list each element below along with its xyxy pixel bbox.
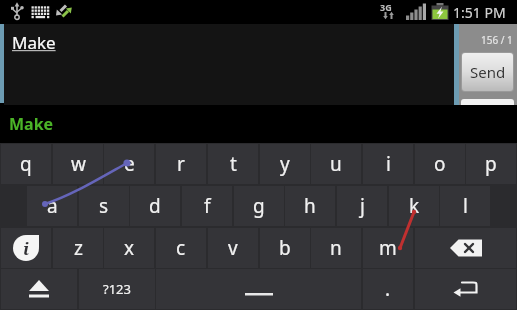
- staticText: Make: [9, 113, 54, 135]
- button[interactable]: Send: [462, 53, 513, 91]
- staticText: e: [124, 151, 135, 177]
- button[interactable]: j: [337, 186, 387, 226]
- button[interactable]: p: [466, 144, 516, 184]
- staticText: v: [228, 235, 238, 261]
- staticText: a: [47, 193, 58, 219]
- staticText: l: [463, 193, 468, 219]
- button[interactable]: q: [1, 144, 51, 184]
- staticText: t: [230, 151, 237, 177]
- button[interactable]: ?123: [79, 269, 155, 309]
- staticText: k: [409, 193, 420, 219]
- button[interactable]: t: [208, 144, 258, 184]
- button[interactable]: [156, 269, 361, 309]
- button[interactable]: a: [27, 186, 77, 226]
- button[interactable]: b: [260, 228, 310, 268]
- staticText: f: [204, 193, 211, 219]
- button[interactable]: v: [208, 228, 258, 268]
- staticText: n: [330, 235, 342, 261]
- button[interactable]: Make: [4, 24, 454, 105]
- staticText: w: [71, 151, 86, 177]
- staticText: p: [485, 151, 497, 177]
- button[interactable]: Make: [0, 105, 517, 143]
- button[interactable]: .: [363, 269, 413, 309]
- button[interactable]: u: [311, 144, 361, 184]
- button[interactable]: w: [53, 144, 103, 184]
- staticText: d: [149, 193, 161, 219]
- staticText: g: [253, 193, 265, 219]
- button[interactable]: r: [156, 144, 206, 184]
- button[interactable]: g: [234, 186, 284, 226]
- staticText: ?123: [103, 280, 131, 298]
- staticText: m: [379, 235, 397, 261]
- staticText: o: [434, 151, 446, 177]
- button[interactable]: i: [1, 228, 51, 268]
- button[interactable]: o: [415, 144, 465, 184]
- button[interactable]: z: [53, 228, 103, 268]
- staticText: .: [385, 276, 391, 302]
- staticText: h: [304, 193, 316, 219]
- staticText: y: [280, 151, 290, 177]
- staticText: z: [74, 235, 83, 261]
- staticText: q: [20, 151, 32, 177]
- button[interactable]: y: [260, 144, 310, 184]
- button[interactable]: [415, 269, 516, 309]
- button[interactable]: [1, 269, 77, 309]
- button[interactable]: l: [440, 186, 490, 226]
- button[interactable]: f: [182, 186, 232, 226]
- staticText: s: [99, 193, 109, 219]
- staticText: Send: [470, 62, 506, 82]
- button[interactable]: n: [311, 228, 361, 268]
- button[interactable]: s: [79, 186, 129, 226]
- button[interactable]: m: [363, 228, 413, 268]
- staticText: c: [176, 235, 186, 261]
- button[interactable]: i: [363, 144, 413, 184]
- staticText: x: [124, 235, 135, 261]
- button[interactable]: c: [156, 228, 206, 268]
- button[interactable]: e: [104, 144, 154, 184]
- staticText: j: [360, 193, 365, 219]
- staticText: u: [330, 151, 342, 177]
- button[interactable]: [415, 228, 516, 268]
- button[interactable]: x: [104, 228, 154, 268]
- staticText: Make: [12, 31, 56, 54]
- button[interactable]: d: [130, 186, 180, 226]
- staticText: 156 / 1: [481, 33, 513, 47]
- button[interactable]: h: [285, 186, 335, 226]
- staticText: 1:51 PM: [453, 3, 506, 22]
- staticText: b: [279, 235, 291, 261]
- staticText: r: [177, 151, 185, 177]
- staticText: 3G: [380, 1, 392, 13]
- staticText: i: [386, 151, 391, 177]
- staticText: i: [23, 237, 30, 260]
- button[interactable]: k: [389, 186, 439, 226]
